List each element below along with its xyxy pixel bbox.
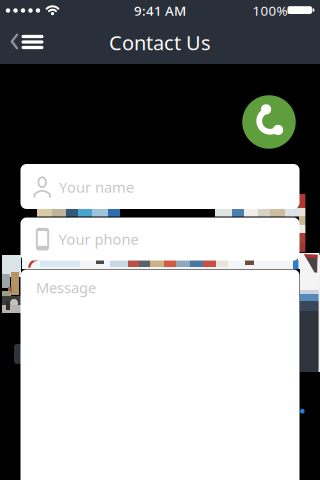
staticText: 100% xyxy=(252,2,287,19)
staticText: Your phone xyxy=(58,229,138,249)
staticText: Message xyxy=(36,278,96,297)
button[interactable]: Call xyxy=(242,95,296,149)
button[interactable]: Message xyxy=(20,269,299,480)
staticText: Your name xyxy=(59,177,134,197)
button[interactable]: Back xyxy=(0,20,52,64)
button[interactable]: Your phone xyxy=(20,217,299,260)
staticText: Contact Us xyxy=(109,29,211,56)
staticText: 9:41 AM xyxy=(134,2,186,19)
button[interactable]: Your name xyxy=(20,164,299,209)
